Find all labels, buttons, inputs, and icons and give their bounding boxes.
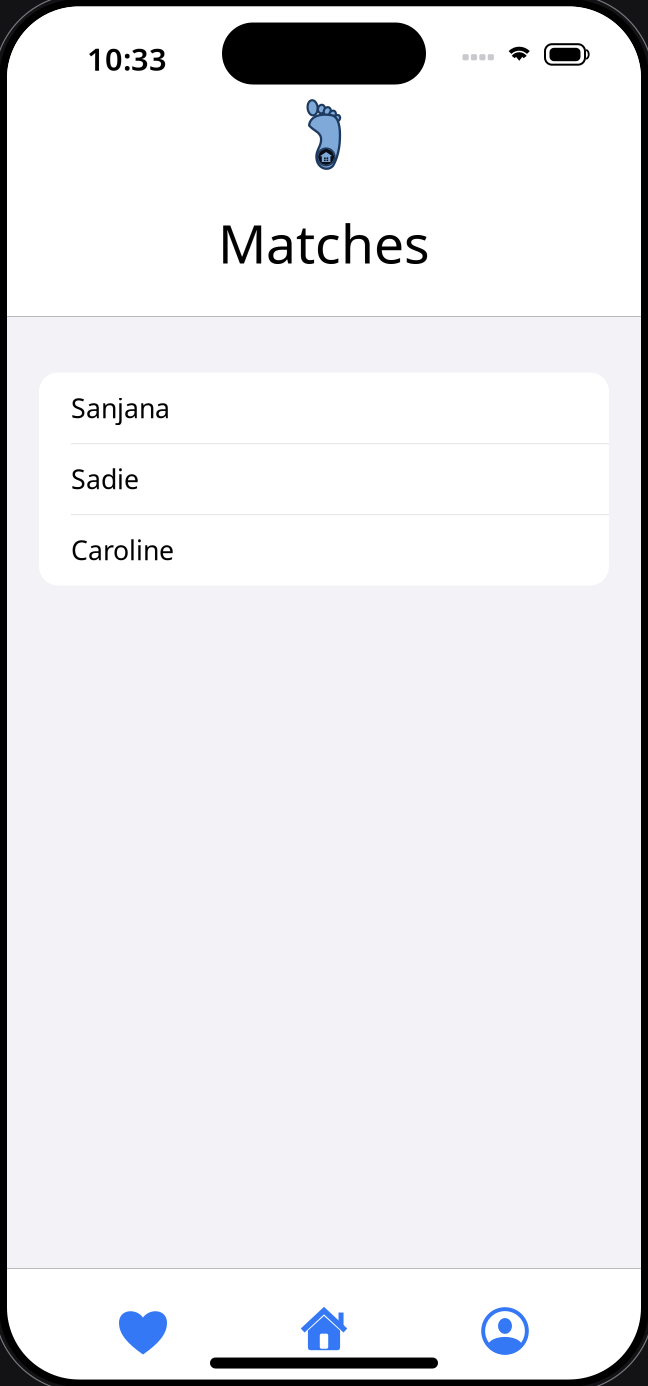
button[interactable]: Matches [52, 1306, 233, 1355]
staticText: Matches [218, 207, 430, 278]
button[interactable]: Profile [414, 1306, 595, 1355]
staticText: Caroline [71, 532, 174, 568]
button[interactable]: Sanjana [39, 372, 609, 443]
staticText: 10:33 [87, 38, 167, 79]
staticText: Sanjana [71, 390, 170, 426]
button[interactable]: Sadie [39, 443, 609, 514]
staticText: Sadie [71, 461, 139, 497]
button[interactable]: Home [233, 1306, 414, 1355]
button[interactable]: Caroline [39, 514, 609, 585]
